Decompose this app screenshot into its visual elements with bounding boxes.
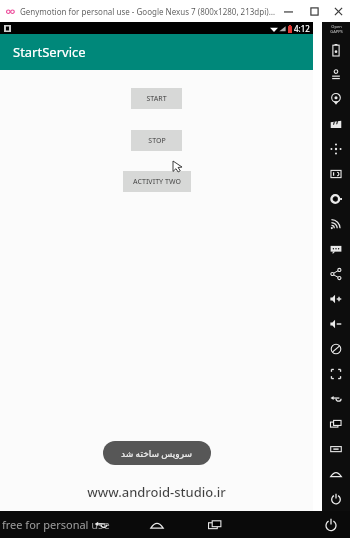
button[interactable]: Disk IO <box>322 186 350 211</box>
button[interactable]: Minimize <box>275 0 301 22</box>
staticText: START <box>146 94 167 104</box>
button[interactable]: Volume up <box>322 286 350 311</box>
button[interactable]: ACTIVITY TWO <box>123 171 191 192</box>
button[interactable]: Back <box>88 512 114 538</box>
button[interactable]: Identifiers <box>322 161 350 186</box>
button[interactable]: Close <box>327 0 350 22</box>
staticText: StartService <box>13 43 86 61</box>
button[interactable]: Maximize <box>301 0 327 22</box>
button[interactable]: SMS <box>322 236 350 261</box>
staticText: سرویس ساخته شد <box>121 447 193 459</box>
staticText: STOP <box>148 136 166 146</box>
staticText: Genymotion for personal use - Google Nex… <box>20 6 275 17</box>
button[interactable]: Back <box>322 386 350 411</box>
button[interactable]: GPS <box>322 62 350 86</box>
button[interactable]: Fullscreen <box>322 361 350 386</box>
button[interactable]: Video <box>322 111 350 136</box>
button[interactable]: Share <box>322 261 350 286</box>
button[interactable]: Recents <box>322 436 350 461</box>
button[interactable]: Screenshot <box>322 411 350 436</box>
button[interactable]: Camera <box>322 86 350 111</box>
button[interactable]: Motion sensors <box>322 136 350 161</box>
staticText: www.android-studio.ir <box>87 483 226 501</box>
button[interactable]: Power <box>322 486 350 511</box>
button[interactable]: Rotate screen <box>322 336 350 361</box>
staticText: free for personal use <box>2 517 110 532</box>
staticText: Open GAPPS <box>330 24 343 34</box>
button[interactable]: START <box>131 88 182 109</box>
button[interactable]: Volume down <box>322 311 350 336</box>
button[interactable]: Power <box>318 512 344 538</box>
staticText: 4:12 <box>294 23 310 34</box>
button[interactable]: Home <box>322 461 350 486</box>
button[interactable]: Recents <box>202 512 228 538</box>
button[interactable]: Battery <box>322 38 350 62</box>
button[interactable]: Network <box>322 211 350 236</box>
staticText: ACTIVITY TWO <box>133 177 181 187</box>
button[interactable]: Home <box>144 512 170 538</box>
button[interactable]: STOP <box>131 130 182 151</box>
